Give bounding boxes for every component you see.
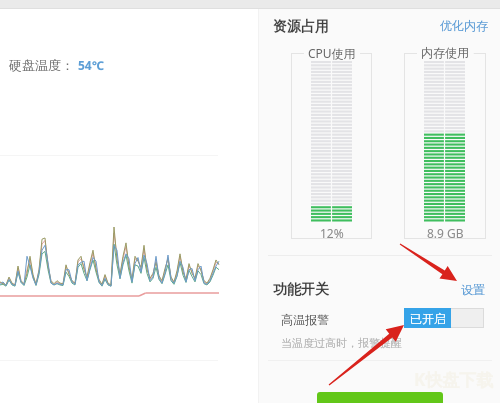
button[interactable]: 高温报警开关 [404, 308, 484, 328]
staticText: 功能开关 [273, 281, 329, 299]
staticText: 内存使用 [421, 45, 469, 60]
button[interactable]: 一键优化 [317, 392, 443, 403]
staticText: 12% [320, 225, 344, 241]
staticText: 设置 [461, 282, 485, 297]
staticText: K快盘下载 [414, 368, 494, 391]
staticText: 高温报警 [281, 312, 329, 327]
staticText: 54℃ [78, 57, 104, 73]
staticText: CPU使用 [308, 45, 356, 61]
staticText: 硬盘温度： [9, 57, 74, 73]
staticText: 8.9 GB [427, 225, 464, 241]
staticText: 当温度过高时，报警提醒 [281, 336, 402, 350]
button[interactable]: 优化内存 [434, 14, 494, 37]
staticText: 资源占用 [273, 18, 329, 36]
button[interactable]: 设置 [455, 278, 491, 301]
staticText: 已开启 [410, 311, 446, 326]
staticText: 优化内存 [440, 18, 488, 33]
